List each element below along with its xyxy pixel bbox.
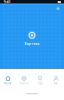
staticText: Express [24, 41, 39, 46]
staticText: 9:41 [3, 0, 10, 4]
staticText: Track [37, 82, 42, 85]
staticText: Home [4, 82, 12, 85]
staticText: ▮▮▮ [57, 0, 60, 3]
staticText: Orders [19, 82, 28, 85]
button[interactable]: Me [48, 76, 64, 85]
button[interactable]: Orders [16, 76, 32, 85]
button[interactable]: Home [0, 76, 16, 85]
staticText: Me [54, 82, 58, 85]
button[interactable]: Help [55, 6, 60, 11]
button[interactable]: Track [32, 76, 48, 85]
